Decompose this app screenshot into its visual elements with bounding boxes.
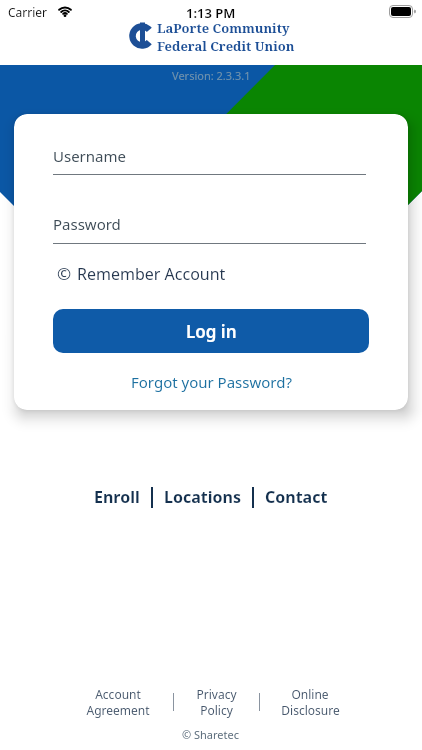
staticText: Forgot your Password?	[131, 372, 292, 392]
button[interactable]: Forgot your Password?	[131, 372, 292, 392]
staticText: Online	[291, 686, 329, 702]
button[interactable]: Account	[63, 686, 173, 718]
staticText: Remember Account	[77, 263, 226, 285]
staticText: Enroll	[94, 486, 140, 508]
button[interactable]: Enroll	[94, 486, 140, 508]
staticText: LaPorte Community	[157, 19, 290, 37]
staticText: Privacy	[196, 686, 237, 702]
staticText: Version: 2.3.3.1	[172, 68, 251, 83]
staticText: Contact	[265, 486, 328, 508]
staticText: 1:13 PM	[186, 4, 236, 22]
staticText: Username	[53, 146, 126, 166]
button[interactable]: Username	[53, 146, 366, 176]
staticText: Account	[95, 686, 141, 702]
staticText: Policy	[200, 702, 233, 718]
staticText: Federal Credit Union	[157, 37, 295, 55]
staticText: Carrier	[8, 4, 48, 20]
button[interactable]: Log in	[53, 309, 369, 353]
button[interactable]: Contact	[265, 486, 328, 508]
button[interactable]: Privacy	[174, 686, 259, 718]
button[interactable]: ©	[57, 262, 226, 285]
button[interactable]: Locations	[164, 486, 241, 508]
button[interactable]: Password	[53, 214, 366, 244]
staticText: Disclosure	[281, 702, 340, 718]
staticText: © Sharetec	[182, 727, 240, 742]
button[interactable]: Online	[260, 686, 360, 718]
staticText: Locations	[164, 486, 241, 508]
staticText: Log in	[186, 320, 237, 343]
staticText: ©	[57, 262, 72, 285]
staticText: Agreement	[86, 702, 150, 718]
staticText: Password	[53, 214, 121, 234]
